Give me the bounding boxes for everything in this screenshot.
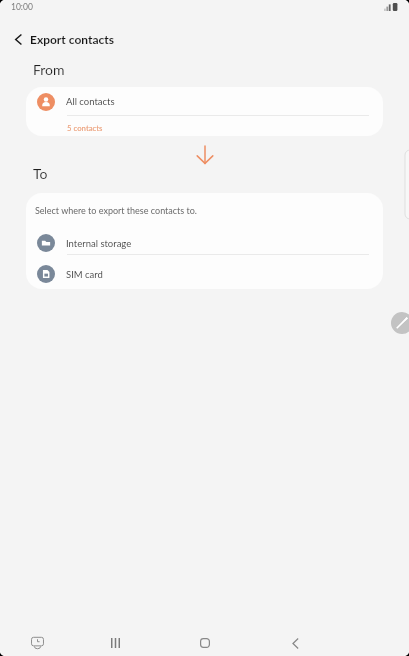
staticText: From bbox=[33, 61, 65, 78]
button[interactable]: Internal storage bbox=[26, 228, 383, 258]
staticText: Internal storage bbox=[66, 238, 132, 249]
staticText: Export contacts bbox=[30, 32, 115, 46]
staticText: All contacts bbox=[66, 96, 115, 107]
button[interactable]: SIM card bbox=[26, 259, 383, 289]
staticText: Select where to export these contacts to… bbox=[35, 205, 197, 216]
staticText: SIM card bbox=[66, 269, 103, 280]
staticText: To bbox=[33, 165, 48, 182]
button[interactable]: All contacts bbox=[26, 87, 383, 116]
staticText: 5 contacts bbox=[67, 123, 103, 132]
button[interactable]: Edit bbox=[391, 312, 409, 334]
button[interactable]: Screen capture bbox=[22, 627, 52, 656]
button[interactable]: Recents bbox=[100, 628, 130, 656]
button[interactable]: Edge panel bbox=[405, 150, 409, 219]
button[interactable]: Home bbox=[190, 628, 220, 656]
button[interactable]: Back bbox=[280, 628, 310, 656]
staticText: 10:00 bbox=[11, 2, 33, 12]
button[interactable]: Navigate up bbox=[6, 27, 30, 51]
